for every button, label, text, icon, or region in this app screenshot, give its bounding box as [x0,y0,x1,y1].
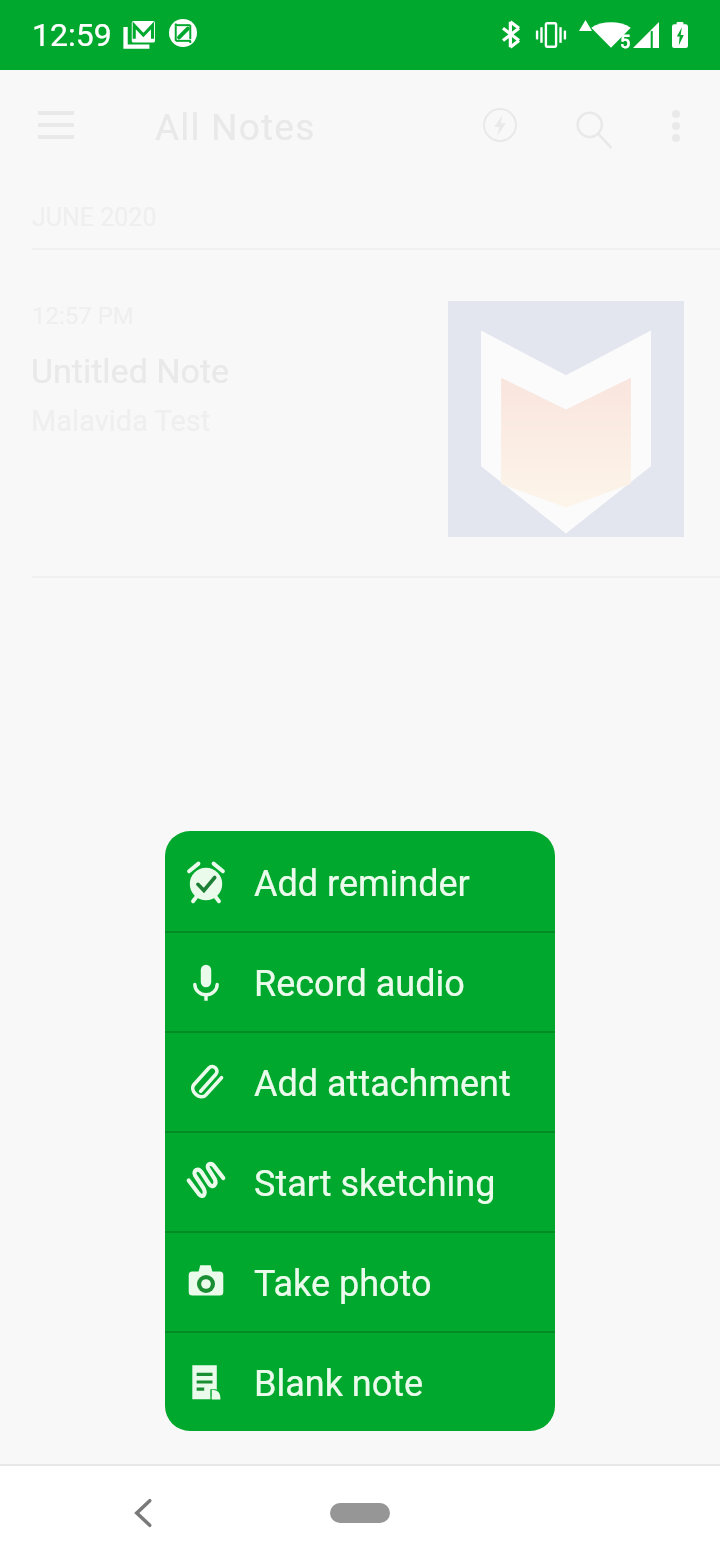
button[interactable]: Start sketching [165,1131,555,1231]
staticText: 12:57 PM [32,302,134,330]
button[interactable]: 12:57 PM [0,261,720,577]
button[interactable]: Add reminder [165,831,555,931]
staticText: Add reminder [254,863,470,905]
staticText: Start sketching [254,1163,496,1205]
button[interactable]: Navigation menu [8,77,104,173]
button[interactable]: Take photo [165,1231,555,1331]
button[interactable]: Home [330,1503,390,1523]
staticText: Take photo [254,1263,432,1305]
button[interactable]: Record audio [165,931,555,1031]
button[interactable]: Add attachment [165,1031,555,1131]
staticText: Untitled Note [31,351,230,391]
staticText: Record audio [254,963,465,1005]
staticText: Blank note [254,1363,424,1405]
staticText: Add attachment [254,1063,511,1105]
button[interactable]: Blank note [165,1331,555,1431]
staticText: 12:59 [32,16,112,54]
staticText: Malavida Test [31,404,211,438]
button[interactable]: Back [96,1466,192,1560]
staticText: JUNE 2020 [32,203,157,232]
staticText: 5 [620,31,631,52]
staticText: All Notes [155,106,316,149]
